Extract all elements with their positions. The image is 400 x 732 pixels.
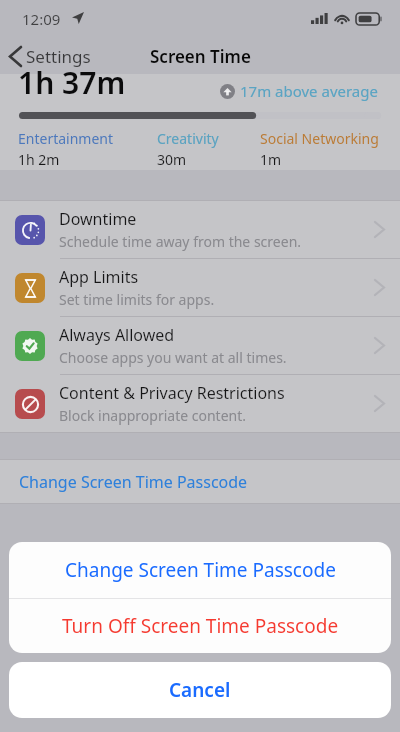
button[interactable]: App Limits [0, 259, 400, 316]
staticText: Cancel [169, 677, 231, 703]
staticText: App Limits [59, 266, 139, 288]
staticText: Set time limits for apps. [59, 290, 215, 309]
staticText: 17m above average [240, 81, 378, 101]
staticText: Social Networking [260, 129, 379, 148]
button[interactable]: Change Screen Time Passcode [0, 460, 400, 503]
button[interactable]: Content & Privacy Restrictions [0, 375, 400, 432]
staticText: Schedule time away from the screen. [59, 232, 302, 251]
button[interactable]: Settings [0, 41, 101, 72]
staticText: 1m [260, 150, 282, 169]
staticText: Content & Privacy Restrictions [59, 382, 285, 404]
staticText: 1h 37m [18, 62, 126, 103]
staticText: 1h 2m [18, 150, 60, 169]
staticText: Block inappropriate content. [59, 406, 247, 425]
staticText: Change Screen Time Passcode [65, 557, 336, 583]
staticText: Downtime [59, 208, 137, 230]
staticText: Turn Off Screen Time Passcode [62, 613, 339, 639]
staticText: Change Screen Time Passcode [19, 471, 248, 493]
staticText: 30m [157, 150, 187, 169]
button[interactable]: Always Allowed [0, 317, 400, 374]
button[interactable]: Turn Off Screen Time Passcode [9, 599, 391, 653]
staticText: Choose apps you want at all times. [59, 348, 287, 367]
button[interactable]: Change Screen Time Passcode [9, 542, 391, 598]
staticText: Screen Time [150, 45, 251, 68]
staticText: Settings [26, 45, 91, 68]
staticText: 12:09 [22, 9, 61, 29]
staticText: Creativity [157, 129, 219, 148]
staticText: Always Allowed [59, 324, 175, 346]
staticText: Entertainment [18, 129, 114, 148]
button[interactable]: Downtime [0, 201, 400, 258]
button[interactable]: Cancel [9, 662, 391, 718]
